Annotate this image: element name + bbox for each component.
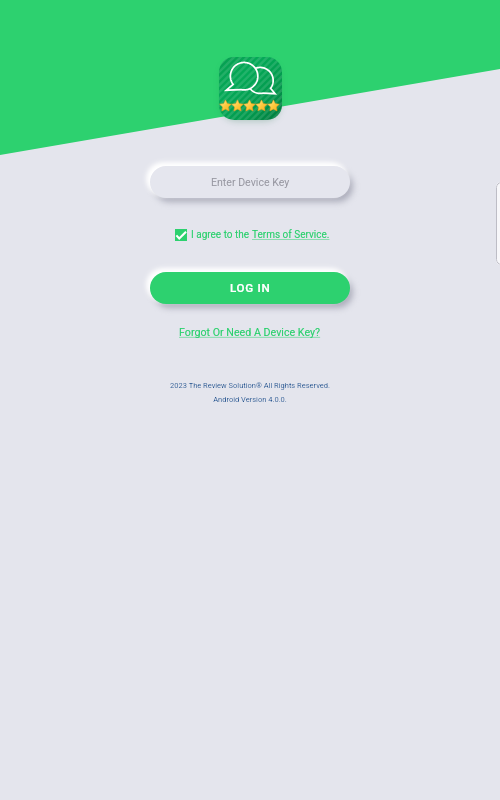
staticText: LOG IN: [230, 281, 271, 295]
button[interactable]: Terms of Service.: [252, 229, 330, 241]
staticText: I agree to the: [191, 229, 252, 241]
staticText: Enter Device Key: [211, 176, 290, 188]
button[interactable]: LOG IN: [150, 272, 350, 304]
button[interactable]: Side panel: [496, 182, 500, 265]
button[interactable]: Enter Device Key: [150, 166, 350, 198]
button[interactable]: I agree checkbox: [175, 229, 187, 241]
staticText: 2023 The Review Solution® All Rights Res…: [170, 381, 330, 390]
button[interactable]: Forgot Or Need A Device Key?: [179, 326, 321, 339]
staticText: Android Version 4.0.0.: [213, 395, 287, 404]
